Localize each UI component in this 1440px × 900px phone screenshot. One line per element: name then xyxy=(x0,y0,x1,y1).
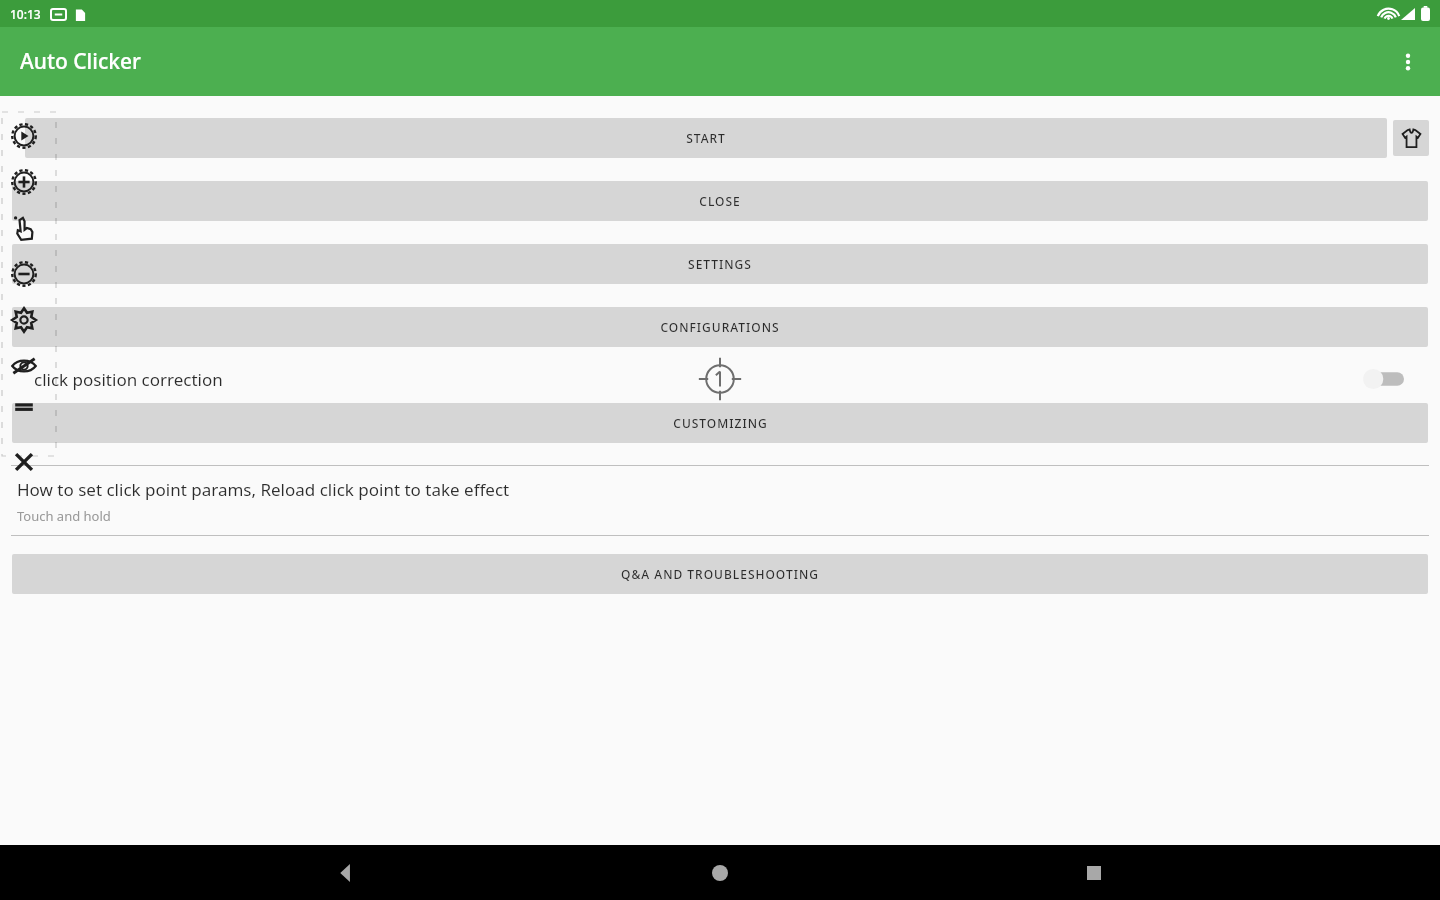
staticText: Q&A AND TROUBLESHOOTING xyxy=(621,566,819,582)
staticText: 10:13 xyxy=(10,6,41,22)
button[interactable]: More options xyxy=(1384,38,1432,86)
button[interactable]: Back xyxy=(318,845,374,900)
staticText: CUSTOMIZING xyxy=(673,415,768,431)
button[interactable]: CUSTOMIZING xyxy=(12,403,1428,443)
button[interactable]: Hide xyxy=(6,348,42,384)
staticText: Touch and hold xyxy=(17,507,111,525)
staticText: START xyxy=(686,130,726,146)
button[interactable]: How to set click point params, Reload cl… xyxy=(0,466,1440,535)
button[interactable]: SETTINGS xyxy=(12,244,1428,284)
button[interactable]: START xyxy=(25,118,1387,158)
button[interactable]: CONFIGURATIONS xyxy=(12,307,1428,347)
button[interactable]: Q&A AND TROUBLESHOOTING xyxy=(12,554,1428,594)
button[interactable]: click position correction xyxy=(0,356,1440,402)
button[interactable]: CLOSE xyxy=(12,181,1428,221)
button[interactable]: Recents xyxy=(1066,845,1122,900)
button[interactable]: Add point xyxy=(6,164,42,200)
staticText: Auto Clicker xyxy=(20,47,141,76)
staticText: CLOSE xyxy=(699,193,741,209)
staticText: click position correction xyxy=(34,368,223,391)
button[interactable]: Settings xyxy=(6,302,42,338)
button[interactable]: Tap xyxy=(6,210,42,246)
staticText: SETTINGS xyxy=(688,256,752,272)
button[interactable]: Home xyxy=(692,845,748,900)
button[interactable]: Menu xyxy=(6,394,42,430)
button[interactable]: Theme xyxy=(1393,120,1429,156)
staticText: CONFIGURATIONS xyxy=(660,319,780,335)
button[interactable]: Play xyxy=(6,118,42,154)
button[interactable]: Remove point xyxy=(6,256,42,292)
staticText: How to set click point params, Reload cl… xyxy=(17,478,510,501)
button[interactable]: Close xyxy=(6,444,42,480)
